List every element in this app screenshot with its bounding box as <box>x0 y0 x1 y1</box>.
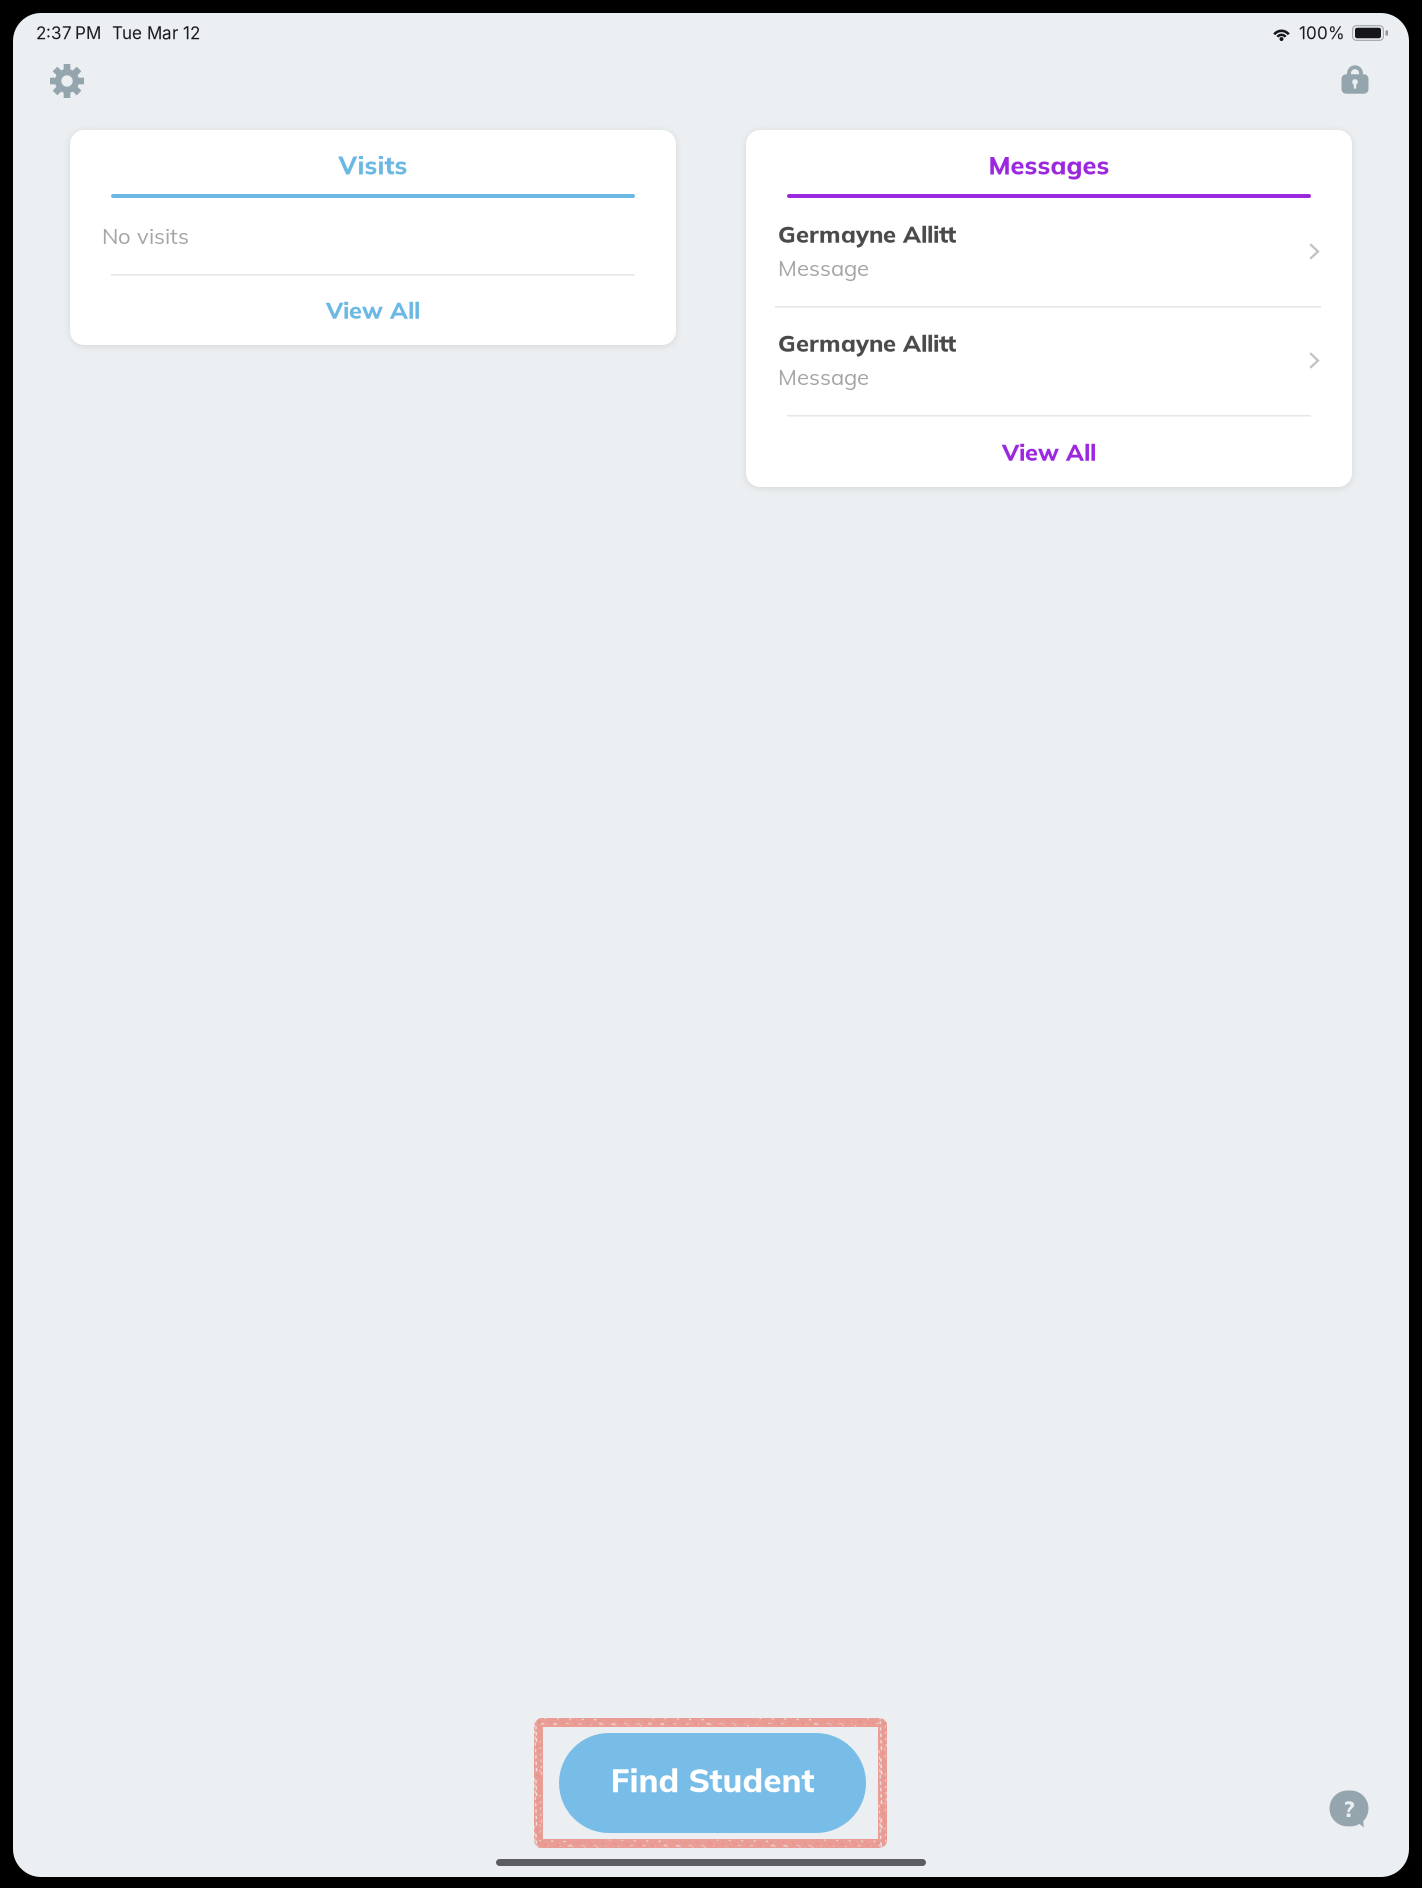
staticText: Messages <box>988 149 1109 181</box>
staticText: Visits <box>338 149 407 181</box>
staticText: Tue Mar 12 <box>112 23 200 43</box>
button[interactable]: Find Student <box>559 1733 866 1833</box>
button[interactable]: Help <box>1321 1781 1377 1837</box>
staticText: View All <box>326 295 420 325</box>
button[interactable]: Settings <box>36 52 98 110</box>
staticText: ? <box>1343 1794 1354 1823</box>
button[interactable]: View All <box>746 417 1352 487</box>
button[interactable]: View All <box>70 275 676 345</box>
staticText: Message <box>778 363 869 391</box>
staticText: 100% <box>1299 23 1345 43</box>
staticText: Germayne Allitt <box>778 219 956 249</box>
staticText: Message <box>778 254 869 282</box>
staticText: View All <box>1002 437 1096 467</box>
button[interactable]: Germayne Allitt <box>746 315 1352 424</box>
staticText: Germayne Allitt <box>778 328 956 358</box>
staticText: 2:37 <box>36 23 72 43</box>
button[interactable]: Germayne Allitt <box>746 206 1352 315</box>
staticText: PM <box>75 23 101 43</box>
staticText: No visits <box>102 222 189 250</box>
staticText: Find Student <box>610 1759 814 1800</box>
button[interactable]: Lock <box>1324 50 1386 108</box>
